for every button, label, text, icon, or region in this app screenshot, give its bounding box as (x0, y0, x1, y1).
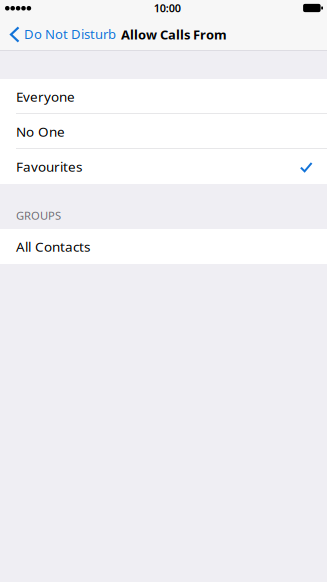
button[interactable]: Favourites (0, 149, 327, 184)
button[interactable]: Everyone (0, 79, 327, 114)
staticText: Everyone (16, 87, 75, 106)
staticText: 10:00 (154, 1, 181, 15)
staticText: GROUPS (16, 208, 61, 223)
staticText: Do Not Disturb (24, 25, 116, 43)
staticText: No One (16, 122, 65, 141)
button[interactable]: Do Not Disturb (0, 20, 116, 50)
button[interactable]: All Contacts (0, 229, 327, 264)
staticText: Favourites (16, 157, 82, 176)
staticText: Allow Calls From (121, 26, 227, 43)
button[interactable]: No One (0, 114, 327, 149)
staticText: All Contacts (16, 237, 90, 256)
